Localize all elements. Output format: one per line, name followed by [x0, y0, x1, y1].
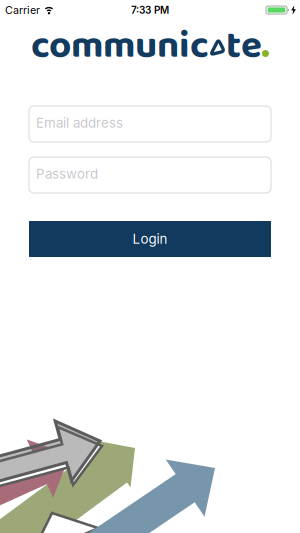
button[interactable]: Password — [29, 157, 271, 193]
staticText: communic — [31, 15, 209, 77]
staticText: 7:33 PM — [131, 4, 169, 16]
staticText: Password — [36, 166, 98, 182]
staticText: Email address — [36, 115, 123, 131]
button[interactable]: Login — [29, 221, 271, 257]
staticText: Login — [132, 231, 167, 247]
staticText: te — [226, 15, 262, 77]
button[interactable]: Email address — [29, 106, 271, 142]
staticText: Carrier — [5, 3, 40, 16]
